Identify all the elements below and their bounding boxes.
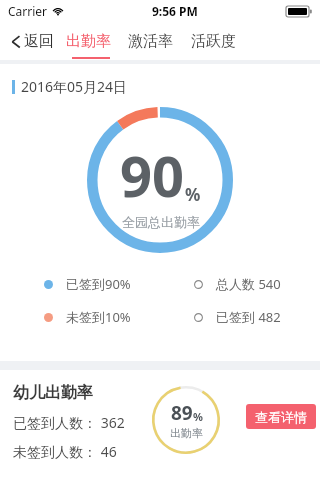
staticText: 90 xyxy=(120,137,185,213)
button[interactable]: 出勤率 xyxy=(58,26,119,57)
staticText: 总人数 540 xyxy=(216,275,281,293)
staticText: 返回 xyxy=(24,32,54,51)
staticText: Carrier xyxy=(8,3,48,19)
staticText: 已签到90% xyxy=(66,275,131,293)
button[interactable]: 返回 xyxy=(0,26,58,57)
button[interactable]: 查看详情 xyxy=(246,404,316,429)
button[interactable]: 活跃度 xyxy=(182,26,245,57)
staticText: 未签到10% xyxy=(66,308,131,326)
staticText: 出勤率 xyxy=(170,426,203,440)
staticText: 活跃度 xyxy=(191,32,236,51)
staticText: 未签到人数： 46 xyxy=(13,442,117,461)
staticText: % xyxy=(185,183,201,206)
staticText: 激活率 xyxy=(128,32,173,51)
staticText: 9:56 PM xyxy=(152,3,198,19)
staticText: 出勤率 xyxy=(66,32,111,51)
staticText: 2016年05月24日 xyxy=(21,77,128,96)
staticText: 已签到 482 xyxy=(216,308,281,326)
staticText: 已签到人数： 362 xyxy=(13,413,125,432)
button[interactable]: 激活率 xyxy=(119,26,182,57)
staticText: 89 xyxy=(171,400,193,426)
staticText: % xyxy=(193,409,203,424)
staticText: 幼儿出勤率 xyxy=(13,383,93,403)
staticText: 全园总出勤率 xyxy=(122,214,200,230)
staticText: 查看详情 xyxy=(255,409,307,425)
